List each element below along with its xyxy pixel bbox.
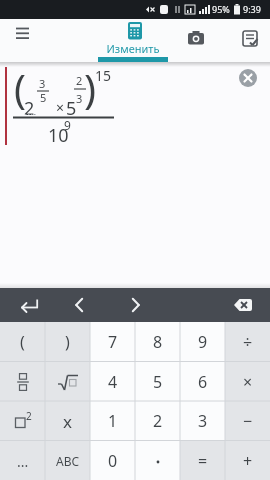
button[interactable] bbox=[45, 362, 90, 402]
staticText: ) bbox=[84, 61, 96, 115]
button[interactable]: 4 bbox=[90, 362, 135, 402]
button[interactable] bbox=[225, 288, 261, 322]
button[interactable]: 6 bbox=[180, 362, 225, 402]
button[interactable]: 7 bbox=[90, 322, 135, 362]
staticText: = bbox=[198, 450, 208, 472]
button[interactable] bbox=[239, 69, 257, 87]
staticText: 1 bbox=[108, 410, 118, 432]
button[interactable] bbox=[0, 362, 45, 402]
button[interactable]: 0 bbox=[90, 441, 135, 480]
staticText: 2 bbox=[76, 73, 83, 88]
staticText: 4 bbox=[108, 371, 118, 393]
staticText: × bbox=[56, 98, 65, 117]
staticText: ) bbox=[65, 331, 70, 353]
button[interactable]: ( bbox=[0, 322, 45, 362]
staticText: − bbox=[243, 410, 253, 432]
staticText: 7 bbox=[108, 331, 118, 353]
staticText: × bbox=[243, 371, 253, 393]
staticText: 5 bbox=[153, 371, 163, 393]
button[interactable]: 8 bbox=[135, 322, 180, 362]
button[interactable]: Изменить bbox=[98, 19, 168, 62]
staticText: 15 bbox=[95, 66, 112, 85]
staticText: 8 bbox=[153, 331, 163, 353]
button[interactable]: ) bbox=[45, 322, 90, 362]
button[interactable] bbox=[118, 288, 152, 322]
staticText: x bbox=[63, 410, 72, 433]
staticText: 6 bbox=[198, 371, 208, 393]
button[interactable]: + bbox=[225, 441, 270, 480]
button[interactable] bbox=[236, 27, 264, 51]
button[interactable] bbox=[182, 27, 210, 51]
staticText: ( bbox=[14, 61, 26, 115]
staticText: ÷ bbox=[243, 331, 253, 353]
staticText: 10 bbox=[48, 123, 69, 148]
staticText: 0 bbox=[108, 450, 118, 472]
staticText: + bbox=[243, 450, 253, 472]
staticText: Изменить bbox=[98, 41, 168, 56]
button[interactable] bbox=[135, 441, 180, 480]
staticText: 3 bbox=[39, 76, 46, 91]
staticText: 9:39 bbox=[243, 3, 261, 15]
button[interactable]: 5 bbox=[135, 362, 180, 402]
button[interactable]: = bbox=[180, 441, 225, 480]
button[interactable] bbox=[62, 288, 96, 322]
button[interactable]: 2 bbox=[0, 401, 45, 441]
button[interactable]: 3 bbox=[180, 401, 225, 441]
button[interactable]: 1 bbox=[90, 401, 135, 441]
button[interactable]: − bbox=[225, 401, 270, 441]
staticText: ... bbox=[17, 452, 29, 471]
button[interactable]: × bbox=[225, 362, 270, 402]
staticText: 2 bbox=[153, 410, 163, 432]
button[interactable]: ... bbox=[0, 441, 45, 480]
button[interactable]: 9 bbox=[180, 322, 225, 362]
staticText: 5 bbox=[66, 96, 77, 121]
button[interactable]: ABC bbox=[45, 441, 90, 480]
staticText: 95% bbox=[212, 3, 230, 15]
button[interactable] bbox=[8, 25, 38, 49]
staticText: 9 bbox=[198, 331, 208, 353]
staticText: ( bbox=[20, 331, 25, 353]
staticText: 9 bbox=[64, 117, 71, 133]
staticText: 3 bbox=[198, 410, 208, 432]
staticText: 2 bbox=[24, 96, 35, 121]
button[interactable]: x bbox=[45, 401, 90, 441]
staticText: ABC bbox=[56, 453, 80, 469]
staticText: 5 bbox=[40, 90, 47, 105]
staticText: 2 bbox=[26, 409, 32, 423]
button[interactable]: 2 bbox=[135, 401, 180, 441]
button[interactable] bbox=[10, 288, 50, 322]
staticText: 3 bbox=[76, 91, 83, 106]
button[interactable]: ÷ bbox=[225, 322, 270, 362]
